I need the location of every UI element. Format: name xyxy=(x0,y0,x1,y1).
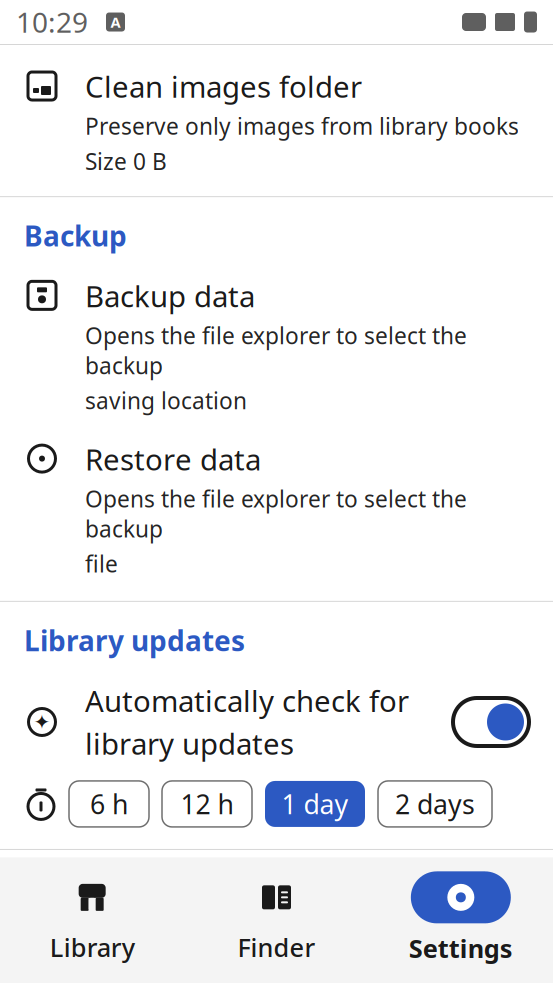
button[interactable]: 12 h xyxy=(162,781,252,827)
staticText: Preserve only images from library books xyxy=(85,111,519,141)
staticText: 12 h xyxy=(180,786,233,822)
button[interactable]: Library xyxy=(0,872,184,964)
staticText: 2 days xyxy=(395,786,475,822)
button[interactable]: Restore data xyxy=(0,428,553,601)
staticText: Automatically check for xyxy=(85,681,409,720)
staticText: Backup xyxy=(24,217,127,254)
staticText: saving location xyxy=(85,385,247,416)
staticText: Finder xyxy=(237,930,315,964)
button[interactable]: Finder xyxy=(184,872,369,964)
staticText: ✦ xyxy=(33,711,50,733)
button[interactable]: Clean images folder xyxy=(0,45,553,196)
staticText: Library xyxy=(50,930,135,964)
staticText: Library updates xyxy=(24,622,245,659)
button[interactable]: Backup data xyxy=(0,264,553,428)
staticText: Settings xyxy=(409,931,513,965)
staticText: Backup data xyxy=(85,276,255,315)
button[interactable]: ✦ xyxy=(0,669,553,775)
staticText: Clean images folder xyxy=(85,67,362,106)
button[interactable]: App updates | v2.2.0 xyxy=(0,850,553,927)
button[interactable]: Automatically check for library updates xyxy=(453,698,529,746)
staticText: Size 0 B xyxy=(85,146,167,176)
staticText: A xyxy=(110,12,120,32)
staticText: library updates xyxy=(85,724,294,763)
staticText: Opens the file explorer to select the ba… xyxy=(85,320,467,380)
staticText: Restore data xyxy=(85,440,261,479)
button[interactable]: 6 h xyxy=(69,781,149,827)
staticText: App updates | v2.2.0 xyxy=(24,869,327,908)
staticText: Opens the file explorer to select the ba… xyxy=(85,484,467,544)
staticText: file xyxy=(85,549,118,579)
staticText: 1 day xyxy=(281,786,348,822)
button[interactable]: Settings xyxy=(369,871,553,965)
button[interactable]: 2 days xyxy=(378,781,492,827)
button[interactable]: 1 day xyxy=(265,781,365,827)
staticText: 10:29 xyxy=(16,3,88,41)
staticText: 6 h xyxy=(90,786,128,822)
